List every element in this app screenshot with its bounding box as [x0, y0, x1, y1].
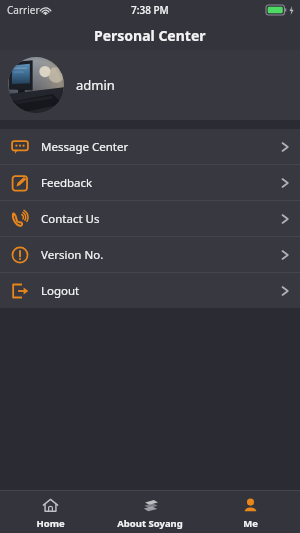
button[interactable]: Home — [0, 491, 100, 533]
button[interactable]: Me — [200, 491, 300, 533]
staticText: About Soyang — [117, 517, 183, 530]
staticText: Contact Us — [41, 211, 280, 227]
button[interactable]: Logout — [0, 273, 300, 308]
staticText: Personal Center — [94, 26, 206, 45]
staticText: admin — [76, 76, 115, 94]
staticText: Carrier — [7, 3, 40, 17]
staticText: Version No. — [41, 247, 280, 263]
button[interactable]: Version No. — [0, 237, 300, 272]
button[interactable]: Feedback — [0, 165, 300, 200]
button[interactable]: admin — [0, 50, 300, 120]
staticText: Feedback — [41, 175, 280, 191]
staticText: 7:38 PM — [131, 3, 169, 17]
button[interactable]: Message Center — [0, 129, 300, 164]
staticText: Message Center — [41, 139, 280, 155]
staticText: Home — [36, 517, 65, 530]
button[interactable]: About Soyang — [100, 491, 200, 533]
staticText: Logout — [41, 283, 280, 299]
staticText: Me — [243, 517, 258, 530]
button[interactable]: Contact Us — [0, 201, 300, 236]
